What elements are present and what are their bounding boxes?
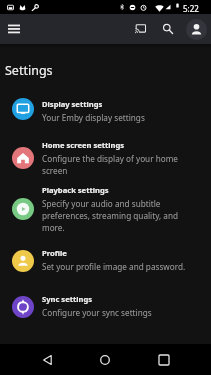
staticText: Specify your audio and subtitle preferen… bbox=[42, 198, 194, 233]
staticText: Playback settings bbox=[42, 185, 194, 195]
button[interactable]: Search bbox=[156, 17, 180, 41]
staticText: Configure the display of your home scree… bbox=[42, 153, 194, 176]
button[interactable]: Recents bbox=[152, 348, 176, 372]
button[interactable]: Profile bbox=[184, 17, 208, 41]
staticText: Settings bbox=[5, 62, 53, 79]
button[interactable]: Sync settings bbox=[0, 280, 211, 334]
button[interactable]: Home screen settings bbox=[0, 131, 211, 185]
button[interactable]: Display settings bbox=[0, 82, 211, 136]
staticText: Configure your sync settings bbox=[42, 307, 194, 318]
button[interactable]: Back bbox=[36, 348, 60, 372]
button[interactable]: Profile bbox=[0, 234, 211, 288]
button[interactable]: Menu bbox=[2, 17, 26, 41]
staticText: Sync settings bbox=[42, 294, 194, 304]
staticText: Home screen settings bbox=[42, 140, 194, 150]
button[interactable]: Playback settings bbox=[0, 182, 211, 236]
staticText: Display settings bbox=[42, 99, 194, 109]
staticText: Your Emby display settings bbox=[42, 112, 194, 123]
staticText: Profile bbox=[42, 248, 194, 258]
staticText: 5:22 bbox=[183, 3, 199, 14]
button[interactable]: Cast bbox=[128, 17, 152, 41]
staticText: Set your profile image and password. bbox=[42, 261, 194, 272]
button[interactable]: Home bbox=[93, 348, 117, 372]
